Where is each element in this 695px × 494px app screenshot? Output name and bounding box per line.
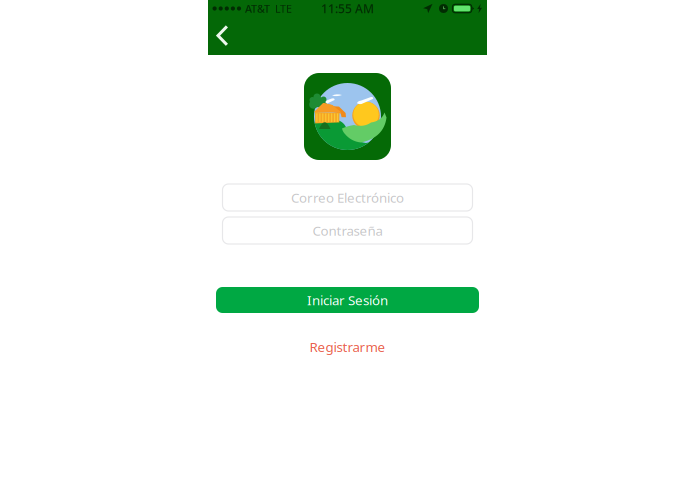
- staticText: AT&T: [245, 1, 270, 16]
- staticText: Iniciar Sesión: [307, 291, 388, 309]
- staticText: Contraseña: [312, 222, 382, 239]
- button[interactable]: Correo Electrónico: [222, 184, 472, 211]
- staticText: Registrarme: [309, 338, 385, 356]
- button[interactable]: Iniciar Sesión: [216, 287, 479, 313]
- staticText: LTE: [275, 1, 292, 16]
- button[interactable]: Registrarme: [299, 335, 395, 359]
- button[interactable]: Back: [208, 17, 240, 55]
- button[interactable]: Contraseña: [222, 217, 472, 244]
- staticText: Correo Electrónico: [291, 189, 404, 206]
- staticText: 11:55 AM: [321, 0, 374, 16]
